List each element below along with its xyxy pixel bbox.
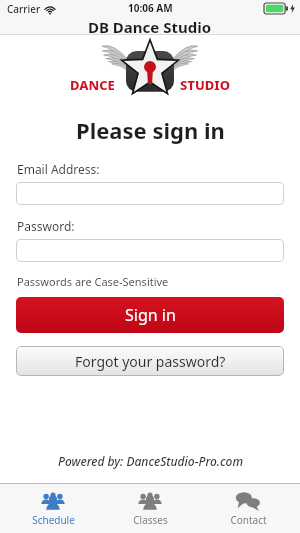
staticText: Please sign in: [76, 115, 225, 145]
button[interactable]: Forgot your password?: [16, 346, 284, 376]
staticText: Powered by: DanceStudio-Pro.com: [58, 453, 243, 469]
staticText: Email Address:: [17, 161, 100, 177]
staticText: Carrier: [7, 2, 41, 16]
button[interactable]: Schedule: [8, 491, 98, 527]
button[interactable]: Contact: [203, 491, 293, 527]
staticText: Passwords are Case-Sensitive: [17, 274, 169, 289]
button[interactable]: Sign in: [16, 297, 284, 333]
staticText: DB Dance Studio: [88, 17, 212, 34]
staticText: Forgot your password?: [75, 352, 226, 371]
staticText: Classes: [133, 513, 168, 527]
button[interactable]: [16, 239, 284, 262]
staticText: Password:: [17, 218, 75, 234]
staticText: Schedule: [32, 513, 75, 527]
button[interactable]: Classes: [105, 491, 195, 527]
staticText: Sign in: [125, 304, 176, 326]
staticText: STUDIO: [180, 76, 230, 94]
staticText: DANCE: [70, 76, 115, 94]
staticText: 10:06 AM: [128, 1, 173, 15]
staticText: Contact: [230, 513, 267, 527]
button[interactable]: [16, 182, 284, 205]
